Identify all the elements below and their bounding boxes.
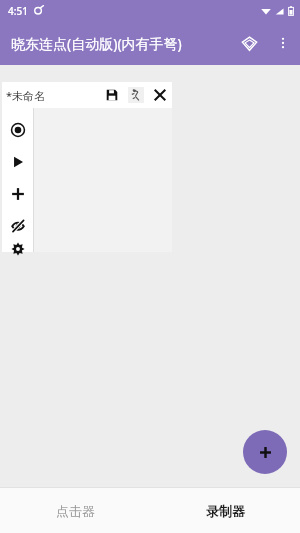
button[interactable]: Add [243, 430, 287, 474]
button[interactable]: Hide [6, 214, 30, 238]
button[interactable]: 录制器 [150, 488, 300, 533]
staticText: 晓东连点(自动版)(内有手弩) [11, 34, 182, 53]
button[interactable]: Preview image [124, 83, 148, 107]
button[interactable]: Add [6, 182, 30, 206]
button[interactable]: Settings [6, 246, 30, 252]
button[interactable]: Save [100, 83, 124, 107]
staticText: 录制器 [206, 503, 245, 519]
button[interactable]: Play [6, 150, 30, 174]
button[interactable]: More options [266, 26, 300, 60]
staticText: *未命名 [6, 88, 46, 103]
button[interactable]: Close [148, 83, 172, 107]
button[interactable]: Favorite [232, 26, 266, 60]
button[interactable]: Record [6, 118, 30, 142]
staticText: 4:51 [8, 4, 28, 18]
staticText: 点击器 [56, 503, 95, 519]
button[interactable]: 点击器 [0, 488, 150, 533]
